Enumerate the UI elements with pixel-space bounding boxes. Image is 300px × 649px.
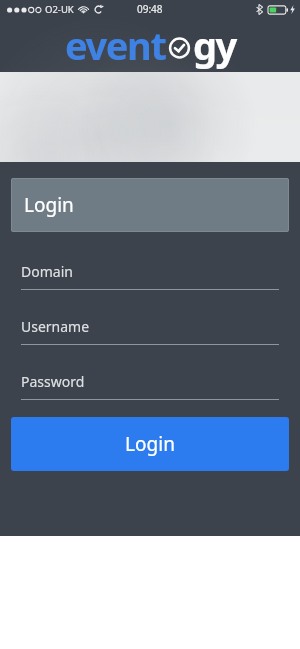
button[interactable]: Username: [21, 317, 279, 345]
button[interactable]: Domain: [21, 262, 279, 290]
button[interactable]: Password: [21, 372, 279, 400]
staticText: 09:48: [137, 2, 163, 16]
staticText: O2-UK: [45, 3, 74, 16]
staticText: event: [65, 19, 166, 71]
staticText: Password: [21, 372, 85, 391]
button[interactable]: Login: [11, 417, 289, 471]
button[interactable]: Login: [11, 178, 289, 232]
staticText: Username: [21, 317, 90, 336]
staticText: Login: [24, 192, 74, 218]
staticText: Domain: [21, 262, 73, 281]
staticText: Login: [125, 431, 175, 457]
staticText: gy: [193, 19, 236, 71]
